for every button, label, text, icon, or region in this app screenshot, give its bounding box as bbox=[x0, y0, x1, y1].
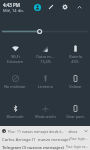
button[interactable]: Telegram (3 nuevos mensajes) bbox=[0, 143, 90, 150]
button[interactable]: Linterna bbox=[30, 70, 60, 100]
staticText: No molestar bbox=[4, 84, 26, 89]
button[interactable]: No molestar bbox=[0, 70, 30, 100]
button[interactable]: Collapse bbox=[72, 0, 86, 14]
button[interactable]: Carlos Arriaga (1 nuevo mensaje) bbox=[0, 135, 90, 143]
button[interactable]: Settings bbox=[58, 0, 72, 14]
staticText: Bluetooth bbox=[6, 114, 24, 119]
button[interactable]: Bluetooth bbox=[0, 100, 30, 130]
button[interactable]: User account bbox=[30, 0, 44, 14]
staticText: Batería bbox=[69, 54, 82, 59]
button[interactable]: Modo avión bbox=[30, 100, 60, 130]
staticText: 4:43 PM bbox=[3, 2, 20, 8]
button[interactable]: Wi-Fi bbox=[0, 40, 30, 70]
button[interactable]: Batería bbox=[60, 40, 90, 70]
staticText: 73,4% bbox=[40, 59, 51, 64]
button[interactable]: Girar pant. bbox=[60, 100, 90, 130]
staticText: Datos m… bbox=[36, 54, 54, 59]
staticText: Your login ex… bbox=[70, 137, 88, 141]
button[interactable]: Edit tiles bbox=[44, 0, 58, 14]
staticText: Eduroam bbox=[7, 59, 23, 64]
staticText: Voltear bbox=[69, 84, 82, 89]
staticText: Telegram (3 nuevos mensajes) bbox=[2, 144, 64, 150]
staticText: Modo avión bbox=[35, 114, 56, 119]
button[interactable]: Brightness bbox=[0, 28, 90, 35]
staticText: Carlos Arriaga (1 nuevo mensaje) bbox=[2, 136, 70, 142]
staticText: Mié, 14 dic. bbox=[3, 8, 25, 13]
staticText: Your login ex… bbox=[66, 145, 88, 149]
staticText: Plus · 11 nuevos mensajes desde ti… · ah… bbox=[8, 129, 78, 133]
button[interactable]: Plus · 11 nuevos mensajes desde ti… · ah… bbox=[0, 126, 90, 150]
button[interactable]: Datos m… bbox=[30, 40, 60, 70]
staticText: Linterna bbox=[38, 84, 53, 89]
button[interactable]: Voltear bbox=[60, 70, 90, 100]
staticText: Wi-Fi bbox=[11, 54, 20, 59]
staticText: 45% bbox=[71, 59, 79, 64]
staticText: Girar pant. bbox=[66, 114, 85, 119]
